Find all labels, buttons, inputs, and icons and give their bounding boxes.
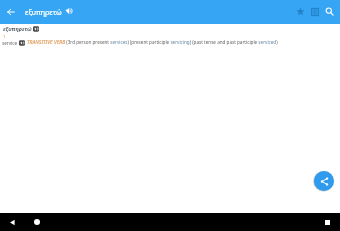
button[interactable]: Back — [6, 216, 18, 228]
button[interactable]: Pronounce — [64, 6, 74, 16]
button[interactable]: Back — [3, 4, 18, 19]
staticText: TRANSITIVE VERB (3rd person present serv… — [27, 39, 278, 46]
button[interactable]: Dictionary — [307, 4, 322, 19]
button[interactable]: Home — [31, 216, 43, 228]
button[interactable]: Share — [314, 171, 334, 191]
staticText: εξυπηρετώ — [25, 7, 62, 17]
staticText: service — [2, 40, 18, 46]
staticText: 1 — [3, 34, 6, 39]
button[interactable]: Pronounce headword — [33, 26, 39, 32]
button[interactable]: Pronounce service — [19, 40, 25, 46]
staticText: εξυπηρετώ — [3, 25, 32, 32]
button[interactable]: Search — [322, 4, 337, 19]
button[interactable]: Recent apps — [321, 216, 333, 228]
button[interactable]: Favorite — [293, 4, 308, 19]
